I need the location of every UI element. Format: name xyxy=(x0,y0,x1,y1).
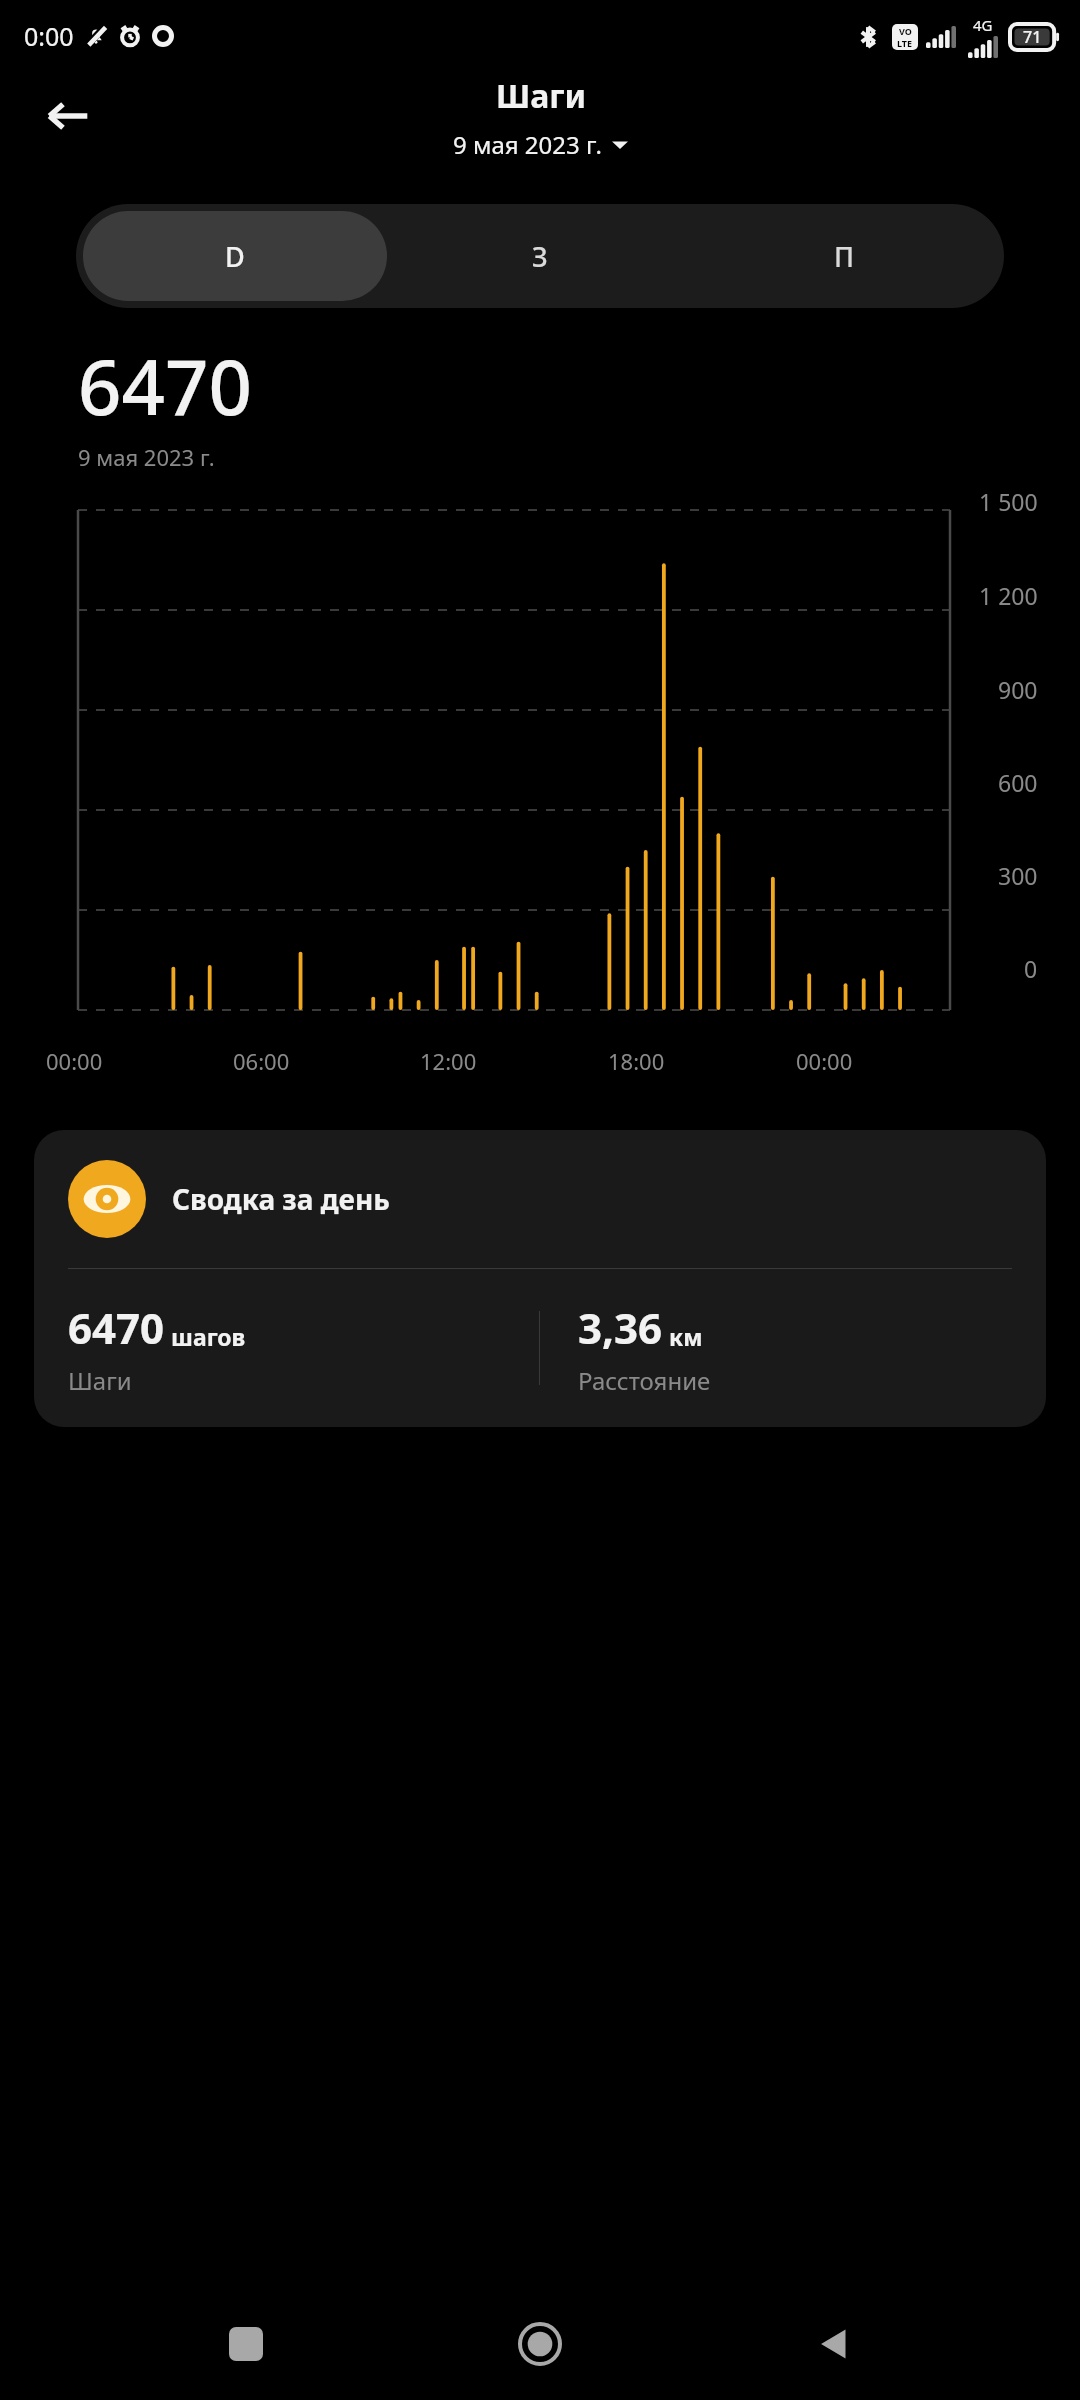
staticText: 4G xyxy=(973,15,993,35)
staticText: 00:00 xyxy=(46,1046,103,1076)
staticText: 6470 xyxy=(68,1299,165,1356)
staticText: 71 xyxy=(1023,26,1042,48)
staticText: 3,36 xyxy=(578,1299,663,1356)
button[interactable]: Back xyxy=(786,2296,882,2392)
staticText: 1 500 xyxy=(979,486,1038,517)
staticText: VO xyxy=(899,25,912,37)
staticText: 18:00 xyxy=(608,1046,665,1076)
staticText: км xyxy=(669,1321,703,1352)
staticText: 600 xyxy=(998,767,1038,798)
button[interactable]: З xyxy=(387,211,692,301)
staticText: Шаги xyxy=(496,74,586,118)
staticText: 0:00 xyxy=(24,19,74,53)
button[interactable]: Home xyxy=(492,2296,588,2392)
staticText: Сводка за день xyxy=(172,1180,390,1218)
staticText: П xyxy=(834,238,855,275)
staticText: Шаги xyxy=(68,1364,132,1397)
staticText: LTE xyxy=(897,37,913,49)
staticText: 9 мая 2023 г. xyxy=(78,442,215,472)
staticText: шагов xyxy=(171,1321,246,1352)
button[interactable]: Recents xyxy=(198,2296,294,2392)
staticText: 00:00 xyxy=(796,1046,853,1076)
button[interactable]: Back xyxy=(30,78,106,154)
button[interactable]: Сводка за день xyxy=(34,1130,1046,1427)
staticText: 9 мая 2023 г. xyxy=(453,128,602,161)
staticText: 900 xyxy=(998,674,1038,705)
button[interactable]: П xyxy=(692,211,997,301)
staticText: З xyxy=(532,238,548,275)
staticText: 06:00 xyxy=(233,1046,290,1076)
staticText: 300 xyxy=(998,860,1038,891)
button[interactable]: 9 мая 2023 г. xyxy=(447,126,634,163)
staticText: D xyxy=(225,238,245,275)
staticText: 1 200 xyxy=(979,580,1038,611)
staticText: 12:00 xyxy=(420,1046,477,1076)
button[interactable]: D xyxy=(83,211,387,301)
staticText: 6470 xyxy=(78,334,252,438)
staticText: Расстояние xyxy=(578,1364,711,1397)
staticText: 0 xyxy=(1024,953,1038,984)
